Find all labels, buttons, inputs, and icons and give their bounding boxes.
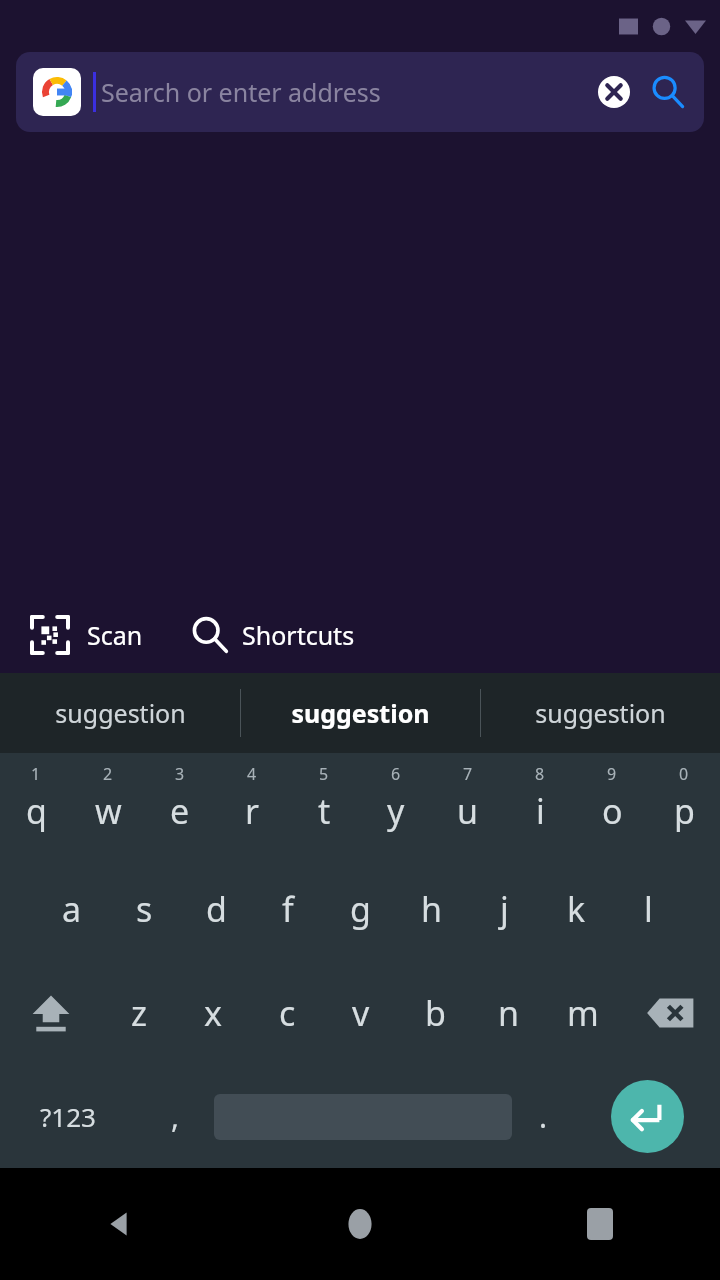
staticText: o xyxy=(602,788,623,834)
staticText: 0 xyxy=(679,763,689,785)
staticText: 9 xyxy=(607,763,617,785)
button[interactable]: 5 xyxy=(288,753,360,857)
button[interactable]: Search or enter address xyxy=(16,52,704,132)
button[interactable]: ?123 xyxy=(0,1065,136,1168)
button[interactable]: l xyxy=(612,857,684,961)
button[interactable]: 9 xyxy=(576,753,648,857)
button[interactable]: 0 xyxy=(648,753,720,857)
staticText: q xyxy=(26,788,47,834)
staticText: r xyxy=(245,788,260,834)
button[interactable]: Recents xyxy=(480,1168,720,1280)
button[interactable]: k xyxy=(540,857,612,961)
staticText: l xyxy=(644,886,653,932)
button[interactable]: m xyxy=(546,961,620,1065)
button[interactable]: , xyxy=(136,1065,214,1168)
staticText: g xyxy=(350,886,371,932)
button[interactable]: Shortcuts xyxy=(185,608,361,662)
button[interactable]: g xyxy=(324,857,396,961)
staticText: 8 xyxy=(535,763,545,785)
staticText: Scan xyxy=(87,618,143,652)
button[interactable]: c xyxy=(250,961,324,1065)
staticText: w xyxy=(95,788,122,834)
button[interactable]: 1 xyxy=(0,753,72,857)
staticText: p xyxy=(674,788,695,834)
staticText: f xyxy=(282,886,294,932)
staticText: m xyxy=(567,990,599,1036)
staticText: suggestion xyxy=(535,696,666,730)
staticText: . xyxy=(539,1096,548,1137)
staticText: Shortcuts xyxy=(242,618,355,652)
button[interactable]: h xyxy=(396,857,468,961)
button[interactable]: Enter xyxy=(611,1080,684,1153)
button[interactable]: v xyxy=(324,961,398,1065)
staticText: 2 xyxy=(103,763,113,785)
button[interactable]: Clear xyxy=(590,68,638,116)
button[interactable]: Scan xyxy=(24,607,149,663)
button[interactable]: n xyxy=(472,961,546,1065)
button[interactable]: 6 xyxy=(360,753,432,857)
staticText: suggestion xyxy=(291,696,430,730)
staticText: h xyxy=(421,886,443,932)
button[interactable]: j xyxy=(468,857,540,961)
button[interactable]: x xyxy=(176,961,250,1065)
staticText: suggestion xyxy=(55,696,186,730)
staticText: t xyxy=(318,788,331,834)
button[interactable]: suggestion xyxy=(481,673,720,753)
button[interactable]: s xyxy=(108,857,180,961)
staticText: ?123 xyxy=(40,1099,96,1134)
button[interactable]: Home xyxy=(240,1168,480,1280)
staticText: 1 xyxy=(31,763,41,785)
button[interactable]: 7 xyxy=(432,753,504,857)
staticText: s xyxy=(136,886,153,932)
staticText: d xyxy=(206,886,227,932)
button[interactable]: f xyxy=(252,857,324,961)
staticText: 6 xyxy=(391,763,401,785)
button[interactable]: z xyxy=(101,961,176,1065)
button[interactable]: d xyxy=(180,857,252,961)
staticText: v xyxy=(352,990,370,1036)
button[interactable]: Backspace xyxy=(620,961,720,1065)
staticText: , xyxy=(171,1096,180,1137)
staticText: b xyxy=(425,990,446,1036)
button[interactable]: suggestion xyxy=(0,673,240,753)
staticText: x xyxy=(204,990,222,1036)
staticText: e xyxy=(170,788,190,834)
button[interactable]: Back xyxy=(0,1168,240,1280)
staticText: Search or enter address xyxy=(101,75,381,109)
button[interactable]: 3 xyxy=(144,753,216,857)
staticText: n xyxy=(498,990,520,1036)
button[interactable]: suggestion xyxy=(241,673,480,753)
staticText: k xyxy=(567,886,586,932)
staticText: y xyxy=(387,788,405,834)
staticText: j xyxy=(500,886,509,932)
button[interactable]: a xyxy=(36,857,108,961)
staticText: 3 xyxy=(175,763,185,785)
button[interactable]: b xyxy=(398,961,472,1065)
button[interactable]: . xyxy=(512,1065,574,1168)
staticText: 4 xyxy=(247,763,257,785)
staticText: i xyxy=(536,788,545,834)
staticText: a xyxy=(62,886,82,932)
staticText: c xyxy=(279,990,296,1036)
staticText: 5 xyxy=(319,763,329,785)
staticText: u xyxy=(457,788,479,834)
button[interactable]: 8 xyxy=(504,753,576,857)
button[interactable]: 2 xyxy=(72,753,144,857)
staticText: z xyxy=(131,990,147,1036)
button[interactable]: Search xyxy=(642,66,694,118)
staticText: 7 xyxy=(463,763,473,785)
button[interactable]: Shift xyxy=(0,961,101,1065)
button[interactable]: 4 xyxy=(216,753,288,857)
